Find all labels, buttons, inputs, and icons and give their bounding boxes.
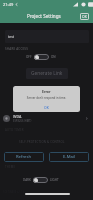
button[interactable]: Toggle theme bbox=[33, 177, 48, 183]
button[interactable]: test bbox=[5, 30, 89, 43]
staticText: E-Mail bbox=[63, 154, 75, 160]
staticText: ON bbox=[51, 55, 56, 59]
other: Open device bbox=[84, 116, 89, 121]
staticText: Refresh bbox=[16, 154, 32, 160]
staticText: SHARE ACCESS bbox=[5, 47, 29, 51]
button[interactable]: E-Mail bbox=[49, 152, 89, 162]
staticText: WDA bbox=[13, 114, 22, 119]
staticText: test bbox=[8, 34, 14, 39]
staticText: DARK bbox=[23, 178, 31, 182]
staticText: THEME bbox=[5, 165, 16, 169]
staticText: OK bbox=[44, 105, 49, 110]
staticText: SELF-PROTECTION & CONTROL bbox=[19, 140, 65, 144]
staticText: AUTO TIMER bbox=[5, 128, 24, 132]
button[interactable]: OK bbox=[80, 13, 89, 20]
staticText: Server don't respond in time. bbox=[15, 96, 78, 100]
staticText: OFF bbox=[26, 55, 32, 59]
staticText: 21:49 bbox=[3, 2, 14, 7]
staticText: Error bbox=[42, 89, 51, 94]
button[interactable]: OK bbox=[37, 104, 56, 111]
staticText: OK bbox=[82, 14, 87, 19]
staticText: ESP8266 (HMT) bbox=[13, 119, 32, 123]
staticText: LIGHT bbox=[50, 178, 59, 182]
button[interactable]: Refresh bbox=[4, 152, 44, 162]
button[interactable]: Generate Link bbox=[26, 68, 68, 79]
button[interactable]: Toggle share access bbox=[34, 54, 49, 60]
staticText: Project Settings bbox=[27, 13, 61, 19]
staticText: Generate Link bbox=[31, 70, 63, 77]
